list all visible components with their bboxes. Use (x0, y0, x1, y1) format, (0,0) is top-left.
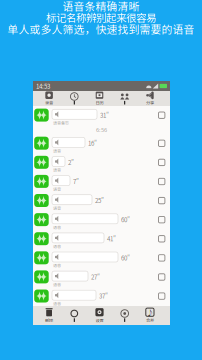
staticText: 31″ (100, 111, 109, 119)
staticText: ♪ (146, 307, 153, 317)
button[interactable]: Action (62, 306, 87, 324)
staticText: 语音 (53, 300, 61, 306)
button[interactable]: 60″ (33, 249, 170, 268)
staticText: 删除 (45, 317, 53, 323)
staticText: 6:56 (96, 125, 107, 134)
button[interactable]: 分享 (137, 91, 162, 106)
staticText: 日历 (95, 100, 103, 106)
button[interactable]: 31″ (33, 106, 170, 125)
staticText: 语音 (53, 281, 61, 287)
button[interactable]: Action (112, 306, 137, 324)
staticText: 录音 (45, 100, 53, 106)
staticText: 分享 (146, 100, 154, 106)
staticText: 标记名称辨别起来很容易 (46, 10, 156, 25)
staticText: 41″ (107, 234, 116, 243)
staticText: 语音条精确清晰 (62, 0, 139, 13)
staticText: 语音 (53, 167, 61, 173)
button[interactable]: 录音 (36, 91, 62, 106)
button[interactable]: 日历 (87, 91, 112, 106)
staticText: 25″ (95, 196, 104, 205)
staticText: 语音 (53, 243, 61, 249)
staticText: 语音备忘 (53, 120, 69, 126)
staticText: 2″ (68, 158, 74, 167)
button[interactable]: 删除 (36, 306, 62, 324)
staticText: 7″ (73, 177, 79, 186)
button[interactable]: Tool (62, 91, 87, 106)
staticText: 语音 (53, 262, 61, 268)
button[interactable]: 7″ (33, 172, 170, 191)
staticText: 语音 (53, 186, 61, 192)
staticText: 语音 (53, 224, 61, 230)
staticText: 语音 (53, 148, 61, 154)
staticText: 合并 (146, 317, 154, 323)
staticText: 14:53 (36, 82, 50, 90)
staticText: 60″ (121, 253, 130, 262)
staticText: 语音 (53, 205, 61, 211)
button[interactable]: 60″ (33, 210, 170, 230)
staticText: 16″ (88, 139, 97, 148)
button[interactable]: 设置 (87, 306, 112, 324)
button[interactable]: 16″ (33, 134, 170, 153)
button[interactable]: 2″ (33, 153, 170, 172)
staticText: 单人或多人筛选，快速找到需要的语音 (7, 21, 194, 36)
button[interactable]: 37″ (33, 287, 170, 306)
button[interactable]: Tool (112, 91, 137, 106)
button[interactable]: 合并 (137, 306, 162, 324)
button[interactable]: 25″ (33, 191, 170, 210)
staticText: 设置 (95, 317, 103, 323)
button[interactable]: 41″ (33, 230, 170, 249)
staticText: 60″ (121, 215, 130, 224)
staticText: 37″ (99, 291, 108, 300)
button[interactable]: 27″ (33, 268, 170, 287)
staticText: 27″ (91, 272, 100, 281)
